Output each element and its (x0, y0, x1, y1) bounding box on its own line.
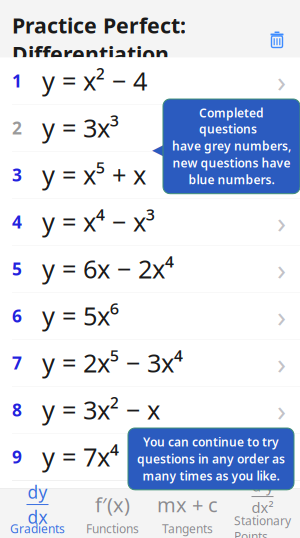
staticText: › (277, 155, 286, 194)
staticText: 2 (12, 116, 22, 139)
staticText: y = 6x − 2x⁴ (42, 252, 174, 285)
staticText: Practice Perfect: Differentiation (12, 11, 186, 68)
staticText: › (277, 249, 286, 288)
staticText: y = 5x⁶ (42, 299, 119, 332)
staticText: › (277, 390, 286, 429)
staticText: y = x² − 4 (42, 64, 147, 97)
button[interactable]: dy (0, 489, 75, 538)
staticText: › (277, 61, 286, 100)
staticText: blue numbers. (188, 172, 274, 188)
staticText: 5 (12, 257, 22, 280)
button[interactable]: 8 (0, 386, 300, 433)
staticText: Functions (86, 520, 139, 536)
staticText: 9 (12, 445, 22, 468)
button[interactable]: 2 (0, 104, 300, 151)
staticText: new questions have (172, 155, 290, 171)
button[interactable]: 1 (0, 57, 300, 104)
staticText: dx² (251, 498, 273, 517)
button[interactable]: 3 (0, 151, 300, 198)
button[interactable]: 4 (0, 198, 300, 245)
button[interactable]: d²y (225, 489, 300, 538)
button[interactable]: 5 (0, 245, 300, 292)
staticText: You can continue to try (143, 434, 279, 450)
staticText: mx + c (157, 491, 218, 518)
staticText: dx (27, 505, 47, 528)
staticText: Gradients (10, 520, 65, 536)
staticText: Completed questions (199, 105, 264, 137)
staticText: 3 (12, 163, 22, 186)
staticText: y = 2x⁵ − 3x⁴ (42, 346, 183, 379)
staticText: ◀ (152, 139, 165, 159)
staticText: Stationary Points (234, 513, 291, 538)
staticText: › (277, 296, 286, 335)
staticText: y = x⁵ + x (42, 158, 146, 191)
staticText: have grey numbers, (172, 138, 291, 154)
button[interactable]: Delete progress (260, 22, 294, 56)
staticText: 7 (12, 351, 22, 374)
button[interactable]: 9 (0, 433, 300, 480)
button[interactable]: 6 (0, 292, 300, 339)
staticText: › (277, 108, 286, 147)
staticText: 1 (12, 69, 22, 92)
staticText: y = 7x⁴ (42, 440, 119, 473)
button[interactable]: 7 (0, 339, 300, 386)
staticText: y = 3x³ (42, 111, 119, 144)
staticText: › (277, 202, 286, 241)
staticText: › (277, 343, 286, 382)
staticText: d²y (252, 476, 273, 496)
staticText: dy (27, 480, 47, 503)
staticText: y = 3x² − x (42, 393, 160, 426)
staticText: many times as you like. (142, 468, 279, 484)
button[interactable]: mx + c (150, 489, 225, 538)
staticText: y = x⁴ − x³ (42, 205, 155, 238)
staticText: 4 (12, 210, 22, 233)
staticText: f′(x) (95, 491, 130, 518)
button[interactable]: f′(x) (75, 489, 150, 538)
staticText: Tangents (162, 520, 213, 536)
staticText: questions in any order as (137, 451, 285, 467)
staticText: 6 (12, 304, 22, 327)
staticText: › (277, 437, 286, 476)
staticText: 8 (12, 398, 22, 421)
